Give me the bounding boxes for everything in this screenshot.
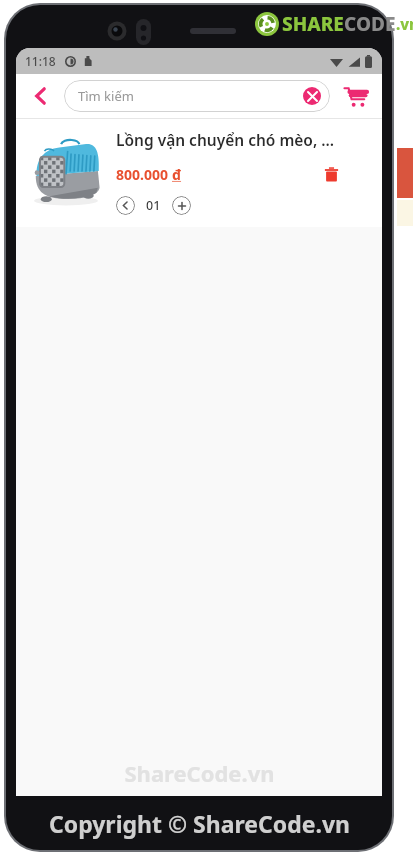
staticText: Tìm kiếm	[78, 87, 134, 105]
button[interactable]: Cart	[338, 79, 372, 113]
button[interactable]: Delete item	[316, 159, 346, 189]
button[interactable]: Back	[24, 79, 58, 113]
staticText: CODE	[344, 11, 396, 37]
button[interactable]: Increase quantity	[172, 196, 191, 215]
button[interactable]: Tìm kiếm	[64, 80, 330, 112]
staticText: ShareCode.vn	[124, 758, 275, 788]
button[interactable]: Decrease quantity	[116, 196, 135, 215]
staticText: .vn	[396, 14, 413, 34]
staticText: 01	[146, 197, 161, 214]
staticText: Copyright © ShareCode.vn	[49, 808, 350, 839]
staticText: 800.000	[116, 165, 172, 184]
staticText: SHARE	[282, 11, 344, 37]
staticText: Lồng vận chuyển chó mèo, ...	[116, 129, 335, 150]
button[interactable]: Lồng vận chuyển chó mèo, ...	[16, 119, 382, 227]
staticText: 11:18	[25, 53, 56, 69]
button[interactable]: Clear	[303, 87, 321, 105]
staticText: đ	[172, 165, 182, 184]
